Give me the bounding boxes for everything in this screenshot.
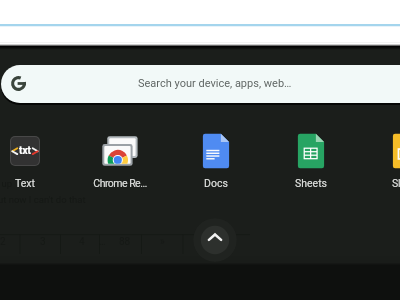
- staticText: Search your device, apps, web…: [138, 77, 292, 90]
- button[interactable]: Sheets: [275, 130, 347, 190]
- button[interactable]: Search your device, apps, web…: [1, 65, 400, 103]
- staticText: txt: [19, 145, 31, 157]
- staticText: Text: [0, 177, 61, 191]
- staticText: Sheets: [275, 177, 347, 191]
- staticText: Slides: [370, 177, 400, 191]
- button[interactable]: Docs: [180, 130, 252, 190]
- staticText: Docs: [180, 177, 252, 191]
- staticText: Chrome Re…: [84, 177, 156, 191]
- button[interactable]: Chrome Re…: [84, 130, 156, 190]
- button[interactable]: txt: [0, 130, 61, 190]
- button[interactable]: Slides: [370, 130, 400, 190]
- button[interactable]: Show all apps: [193, 218, 237, 262]
